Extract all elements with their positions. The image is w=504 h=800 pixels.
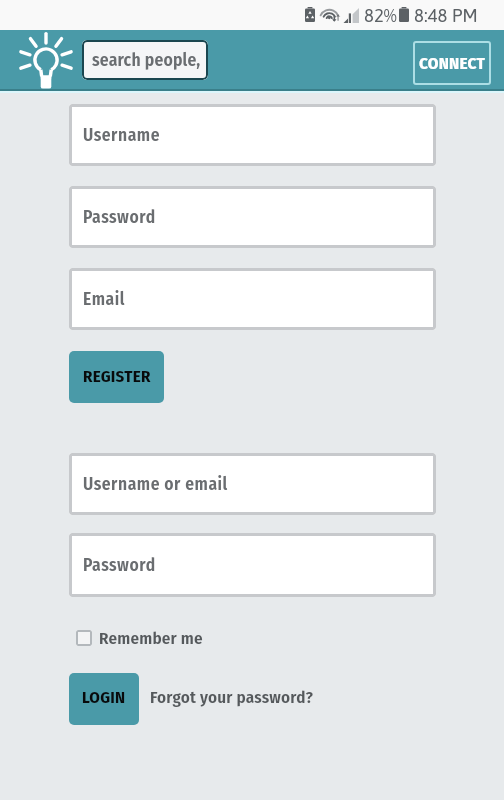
button[interactable]: Email [69, 268, 436, 330]
button[interactable]: Username [69, 104, 436, 166]
button[interactable]: Password [69, 533, 436, 597]
staticText: search people, [92, 50, 201, 71]
staticText: Password [83, 207, 156, 228]
staticText: Username [83, 125, 160, 146]
staticText: Username or email [83, 474, 228, 495]
button[interactable]: search people, [82, 40, 208, 80]
staticText: Email [83, 289, 125, 310]
staticText: 8:48 PM [414, 5, 478, 26]
button[interactable]: LOGIN [69, 673, 139, 725]
staticText: Remember me [99, 628, 203, 648]
staticText: REGISTER [83, 366, 151, 386]
button[interactable]: CONNECT [413, 41, 491, 85]
button[interactable]: Username or email [69, 453, 436, 515]
staticText: LOGIN [82, 687, 126, 707]
button[interactable]: Forgot your password? [150, 687, 314, 707]
staticText: Password [83, 555, 156, 576]
button[interactable]: Password [69, 186, 436, 248]
button[interactable]: Remember me [76, 628, 203, 648]
button[interactable]: REGISTER [69, 351, 164, 403]
button[interactable]: Home [18, 32, 74, 88]
staticText: CONNECT [419, 53, 485, 73]
staticText: 82% [364, 5, 397, 26]
